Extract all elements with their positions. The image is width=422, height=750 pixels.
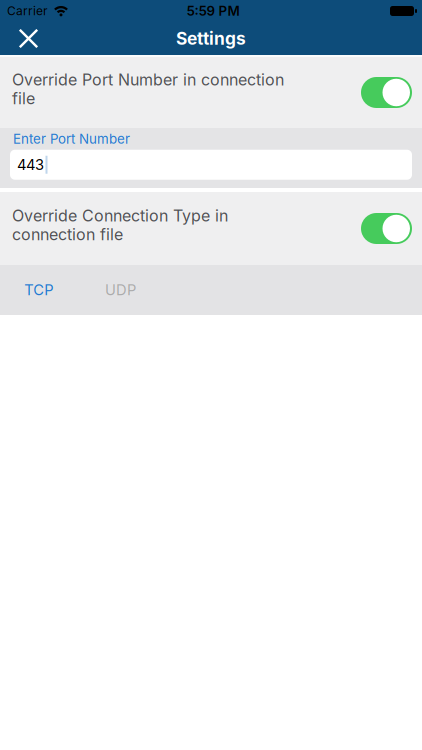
button[interactable]: Enter Port Number [10, 150, 412, 180]
staticText: 5:59 PM [186, 3, 239, 19]
staticText: 443 [17, 156, 44, 173]
button[interactable]: Close [0, 29, 38, 48]
staticText: UDP [105, 281, 136, 299]
staticText: Override Port Number in connection file [12, 70, 284, 108]
button[interactable]: UDP [77, 265, 163, 315]
staticText: Override Connection Type in connection f… [12, 206, 228, 244]
button[interactable]: Override Port Number in connection file [361, 77, 412, 108]
button[interactable]: TCP [0, 265, 77, 315]
staticText: Settings [176, 28, 246, 49]
button[interactable]: Override Connection Type in connection f… [361, 213, 412, 244]
staticText: Enter Port Number [13, 131, 130, 147]
staticText: Carrier [7, 4, 48, 18]
staticText: TCP [24, 281, 53, 299]
